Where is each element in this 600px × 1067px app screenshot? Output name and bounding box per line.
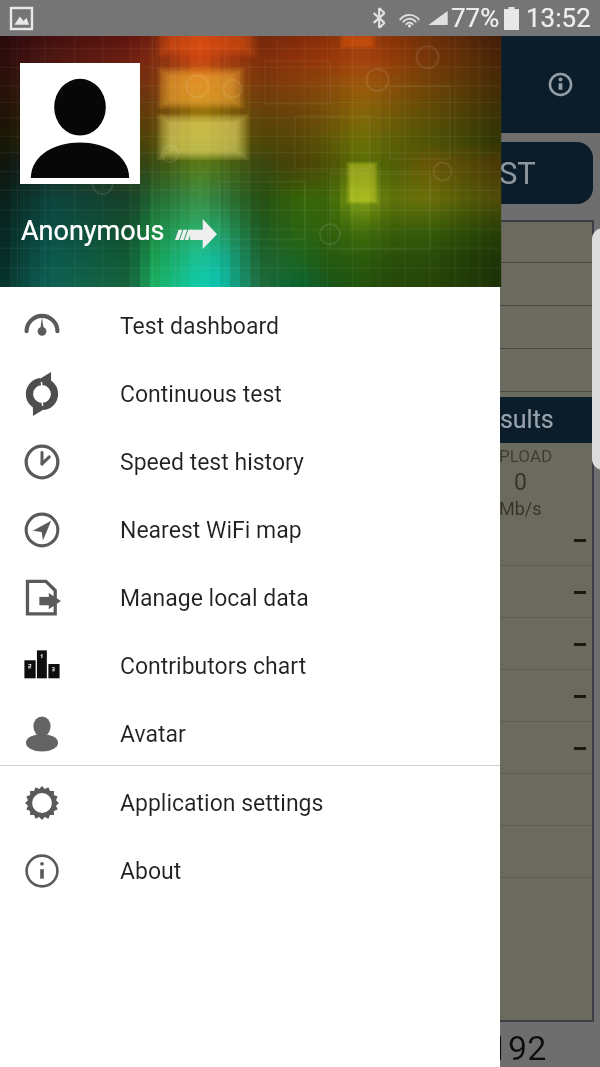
button[interactable]: Nearest WiFi map — [0, 496, 500, 564]
button[interactable]: Application settings — [0, 769, 500, 837]
staticText: Anonymous — [21, 215, 165, 247]
staticText: Contributors chart — [120, 653, 307, 680]
staticText: 77% — [451, 3, 500, 33]
staticText: Test dashboard — [120, 313, 280, 340]
staticText: START TEST — [364, 155, 536, 191]
staticText: UPLOAD — [488, 446, 553, 466]
staticText: Manage local data — [120, 585, 309, 612]
button[interactable]: Speed test history — [0, 428, 500, 496]
button[interactable]: Info — [537, 61, 584, 108]
button[interactable]: About — [0, 837, 500, 905]
button[interactable]: START TEST — [7, 142, 593, 204]
staticText: 0 — [514, 469, 527, 496]
staticText: About — [120, 858, 182, 885]
button[interactable]: Manage local data — [0, 564, 500, 632]
button[interactable]: Test dashboard — [0, 292, 500, 360]
staticText: Speed test history — [120, 449, 304, 476]
button[interactable]: Contributors chart — [0, 632, 500, 700]
staticText: Avatar — [120, 721, 186, 748]
staticText: Nearest WiFi map — [120, 517, 302, 544]
staticText: 192 — [489, 1028, 547, 1067]
staticText: Speed test results — [354, 405, 554, 434]
button[interactable] — [20, 63, 140, 184]
staticText: 13:52 — [526, 3, 591, 33]
staticText: Application settings — [120, 790, 324, 817]
button[interactable]: Avatar — [0, 700, 500, 768]
staticText: Continuous test — [120, 381, 282, 408]
button[interactable]: Continuous test — [0, 360, 500, 428]
staticText: Mb/s — [499, 498, 542, 519]
